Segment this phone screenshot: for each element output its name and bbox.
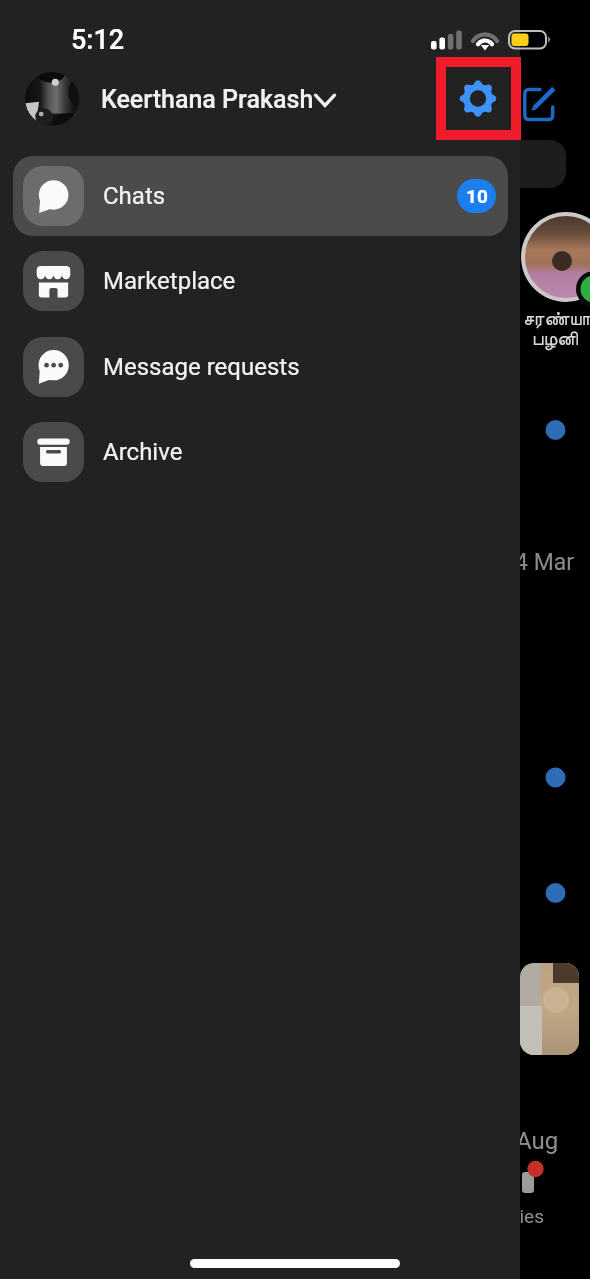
staticText: 5:12 xyxy=(71,24,125,56)
staticText: Keerthana Prakash xyxy=(101,85,314,114)
staticText: Aug xyxy=(516,1127,559,1155)
staticText: Marketplace xyxy=(103,267,236,295)
staticText: 10 xyxy=(466,185,488,207)
button[interactable]: Message requests xyxy=(13,327,508,407)
button[interactable]: Profile picture xyxy=(25,72,79,126)
staticText: Message requests xyxy=(103,353,300,381)
button[interactable]: New message xyxy=(518,82,562,126)
button[interactable]: Marketplace xyxy=(13,241,508,321)
staticText: Archive xyxy=(103,438,183,466)
button[interactable]: Chats xyxy=(13,156,508,236)
staticText: Chats xyxy=(103,182,166,210)
button[interactable]: Settings xyxy=(445,67,510,129)
button[interactable]: Keerthana Prakash xyxy=(95,76,340,122)
staticText: சரண்யா xyxy=(523,310,590,329)
staticText: ries xyxy=(513,1205,544,1227)
button[interactable]: Archive xyxy=(13,412,508,492)
staticText: 4 Mar xyxy=(515,549,575,576)
staticText: பழனி xyxy=(532,330,579,349)
